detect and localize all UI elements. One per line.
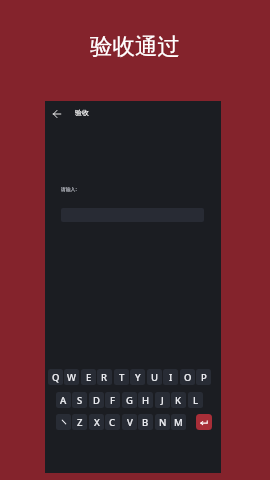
staticText: I	[169, 371, 173, 384]
staticText: N	[159, 416, 167, 429]
button[interactable]: D	[89, 392, 104, 408]
button[interactable]: O	[180, 369, 195, 385]
button[interactable]: Shift	[56, 414, 71, 430]
button[interactable]: X	[89, 414, 104, 430]
button[interactable]: K	[171, 392, 186, 408]
staticText: D	[93, 394, 100, 407]
button[interactable]: A	[56, 392, 71, 408]
button[interactable]: L	[188, 392, 203, 408]
staticText: R	[101, 371, 108, 384]
staticText: T	[119, 371, 125, 384]
staticText: M	[174, 416, 183, 429]
staticText: L	[193, 394, 199, 407]
staticText: 请输入:	[61, 186, 77, 193]
staticText: Y	[135, 371, 141, 384]
staticText: U	[151, 371, 159, 384]
button[interactable]: P	[196, 369, 211, 385]
button[interactable]: V	[122, 414, 137, 430]
button[interactable]: Enter	[196, 414, 212, 430]
staticText: A	[60, 394, 67, 407]
staticText: F	[110, 394, 116, 407]
button[interactable]: Q	[48, 369, 63, 385]
staticText: B	[142, 416, 149, 429]
staticText: Q	[52, 371, 60, 384]
staticText: P	[201, 371, 207, 384]
button[interactable]: N	[155, 414, 170, 430]
staticText: 验收通过	[0, 32, 270, 60]
staticText: W	[67, 371, 76, 384]
staticText: J	[161, 394, 164, 407]
staticText: Z	[77, 416, 83, 429]
button[interactable]: G	[122, 392, 137, 408]
button[interactable]: H	[138, 392, 153, 408]
staticText: C	[109, 416, 116, 429]
staticText: E	[86, 371, 92, 384]
button[interactable]: Z	[72, 414, 87, 430]
button[interactable]: E	[81, 369, 96, 385]
button[interactable]: R	[97, 369, 112, 385]
button[interactable]: J	[155, 392, 170, 408]
button[interactable]: U	[147, 369, 162, 385]
button[interactable]: W	[64, 369, 79, 385]
button[interactable]: B	[138, 414, 153, 430]
button[interactable]: T	[114, 369, 129, 385]
staticText: K	[175, 394, 182, 407]
staticText: S	[77, 394, 83, 407]
button[interactable]: M	[171, 414, 186, 430]
staticText: O	[184, 371, 192, 384]
staticText: X	[94, 416, 100, 429]
button[interactable]: F	[105, 392, 120, 408]
staticText: V	[127, 416, 133, 429]
button[interactable]: C	[105, 414, 120, 430]
button[interactable]: Back	[50, 107, 64, 121]
staticText: H	[142, 394, 150, 407]
staticText: G	[126, 394, 133, 407]
staticText: 验收	[75, 108, 89, 117]
button[interactable]: S	[72, 392, 87, 408]
button[interactable]: I	[163, 369, 178, 385]
button[interactable]: Y	[130, 369, 145, 385]
